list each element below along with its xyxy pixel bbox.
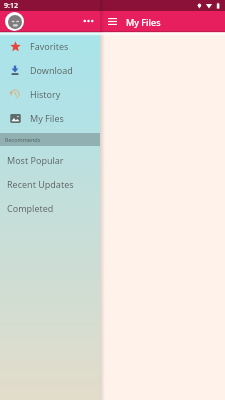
button[interactable]: Favorites bbox=[0, 34, 100, 58]
staticText: History bbox=[30, 88, 61, 100]
button[interactable]: Download bbox=[0, 58, 100, 82]
button[interactable]: History bbox=[0, 82, 100, 106]
staticText: Recent Updates bbox=[7, 178, 74, 190]
staticText: My Files bbox=[30, 112, 64, 124]
staticText: Completed bbox=[7, 202, 54, 214]
button[interactable]: Completed bbox=[0, 196, 100, 220]
button[interactable]: More options bbox=[79, 12, 97, 30]
button[interactable]: Profile bbox=[5, 12, 24, 31]
staticText: 9:12 bbox=[4, 1, 18, 11]
button[interactable]: Recent Updates bbox=[0, 172, 100, 196]
staticText: Favorites bbox=[30, 40, 69, 52]
staticText: Most Popular bbox=[7, 154, 64, 166]
staticText: Download bbox=[30, 64, 73, 76]
staticText: Recommends bbox=[5, 136, 41, 143]
button[interactable]: Most Popular bbox=[0, 148, 100, 172]
staticText: 9:12 bbox=[4, 1, 18, 11]
staticText: My Files bbox=[126, 16, 161, 28]
button[interactable]: My Files bbox=[0, 106, 100, 130]
button[interactable]: Open navigation drawer bbox=[101, 11, 123, 32]
